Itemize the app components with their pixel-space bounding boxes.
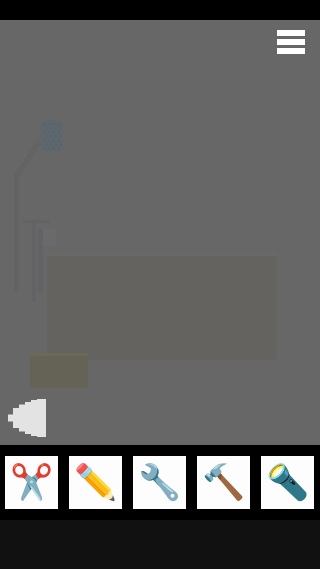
button[interactable]: Menu <box>269 20 313 64</box>
button[interactable]: Pan left <box>8 399 46 437</box>
staticText: ✏️ <box>74 463 117 502</box>
button[interactable]: Pencil <box>69 456 122 509</box>
staticText: ✂️ <box>10 463 53 502</box>
button[interactable]: Wrench <box>133 456 186 509</box>
button[interactable]: Hammer <box>197 456 250 509</box>
staticText: 🔨 <box>202 463 245 502</box>
staticText: 🔦 <box>266 463 309 502</box>
staticText: 🔧 <box>138 463 181 502</box>
button[interactable]: Flashlight <box>261 456 314 509</box>
button[interactable]: Scissors <box>5 456 58 509</box>
